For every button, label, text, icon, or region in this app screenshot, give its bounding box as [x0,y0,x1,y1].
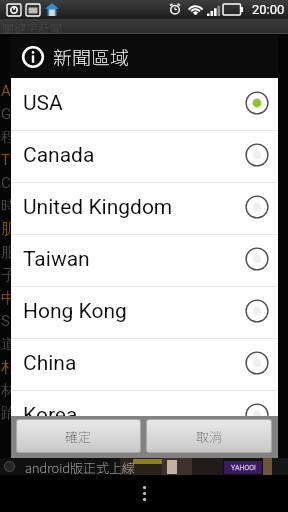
staticText: USA [23,91,245,116]
button[interactable]: China [11,339,278,390]
staticText: T [1,151,10,169]
staticText: China [23,351,245,376]
staticText: 時 [1,197,16,216]
staticText: 程 [1,128,16,147]
staticText: 取消 [196,427,223,446]
button[interactable]: Korea [11,391,278,416]
staticText: android版正式上線 [25,458,136,475]
staticText: 新聞區域 [53,43,130,71]
button[interactable]: Canada [11,131,278,182]
button[interactable]: Taiwan [11,235,278,286]
button[interactable]: Hong Kong [11,287,278,338]
staticText: Korea [23,403,245,416]
button[interactable]: United Kingdom [11,183,278,234]
staticText: 朴 [1,358,16,377]
staticText: United Kingdom [23,195,245,220]
staticText: YAHOO! [231,464,256,472]
staticText: A [1,82,11,100]
staticText: C [1,174,11,192]
staticText: S [1,312,10,330]
staticText: 中 [1,289,16,308]
button[interactable]: USA [11,79,278,130]
staticText: 20:00 [252,2,285,17]
staticText: 服 [1,243,16,262]
staticText: Canada [23,143,245,168]
staticText: 材 [1,381,16,400]
staticText: 道 [1,335,16,354]
button[interactable]: 確定 [17,420,140,452]
staticText: 子 [1,266,16,285]
staticText: 肌 [1,220,16,239]
button[interactable]: 取消 [147,420,271,452]
staticText: 確定 [65,427,92,446]
staticText: Hong Kong [23,299,245,324]
button[interactable]: More options [122,475,166,512]
staticText: Taiwan [23,247,245,272]
staticText: 關鍵字新聞 [2,19,63,34]
staticText: 跆 [1,404,16,423]
staticText: G [1,105,12,123]
